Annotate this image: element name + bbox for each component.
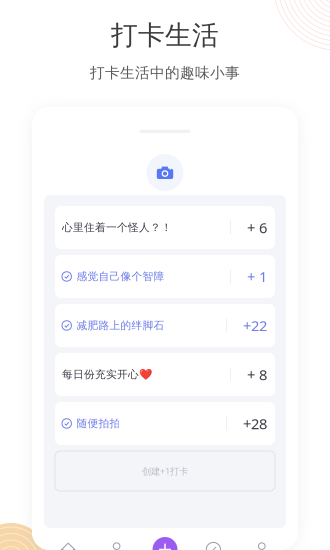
- button[interactable]: Discover: [189, 542, 238, 550]
- button[interactable]: 感觉自己像个智障: [55, 255, 275, 298]
- button[interactable]: Take photo: [146, 154, 183, 191]
- staticText: 创建+1打卡: [142, 465, 188, 477]
- staticText: 打卡生活中的趣味小事: [90, 64, 240, 82]
- button[interactable]: 减肥路上的绊脚石: [55, 304, 275, 347]
- button[interactable]: 心里住着一个怪人？！: [55, 206, 275, 249]
- staticText: + 1: [247, 267, 267, 286]
- staticText: +28: [243, 414, 267, 433]
- staticText: +22: [243, 316, 267, 335]
- button[interactable]: Create post: [141, 537, 189, 550]
- button[interactable]: Home: [44, 542, 92, 550]
- staticText: 每日份充实开心❤️: [62, 368, 152, 381]
- button[interactable]: 创建+1打卡: [55, 451, 275, 491]
- button[interactable]: Profile: [238, 542, 286, 550]
- staticText: + 8: [247, 365, 267, 384]
- staticText: 心里住着一个怪人？！: [62, 221, 172, 234]
- staticText: 感觉自己像个智障: [76, 270, 164, 283]
- button[interactable]: 每日份充实开心❤️: [55, 353, 275, 396]
- staticText: 随便拍拍: [76, 417, 120, 430]
- button[interactable]: 随便拍拍: [55, 402, 275, 445]
- staticText: 打卡生活: [111, 19, 219, 52]
- staticText: + 6: [247, 218, 267, 237]
- button[interactable]: Friends: [92, 542, 141, 550]
- staticText: 减肥路上的绊脚石: [76, 319, 164, 332]
